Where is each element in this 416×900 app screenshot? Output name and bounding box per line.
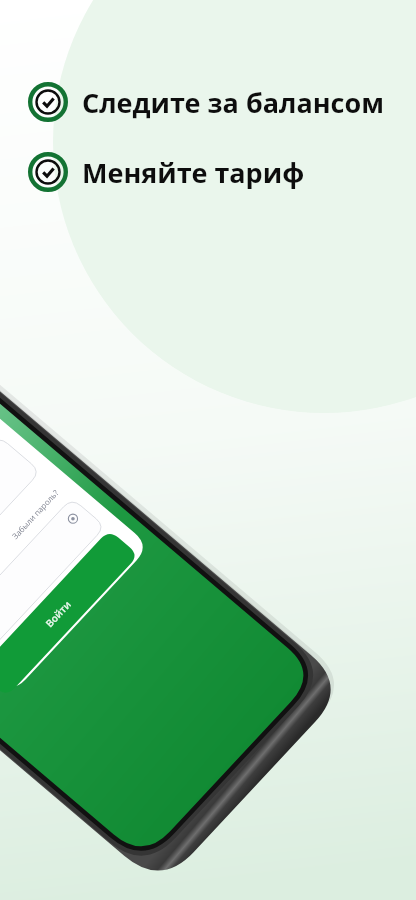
button[interactable]: Меняйте тариф	[28, 152, 305, 192]
staticText: Следите за балансом	[82, 84, 384, 121]
button[interactable]: Следите за балансом	[28, 82, 384, 122]
staticText: Меняйте тариф	[82, 154, 305, 191]
